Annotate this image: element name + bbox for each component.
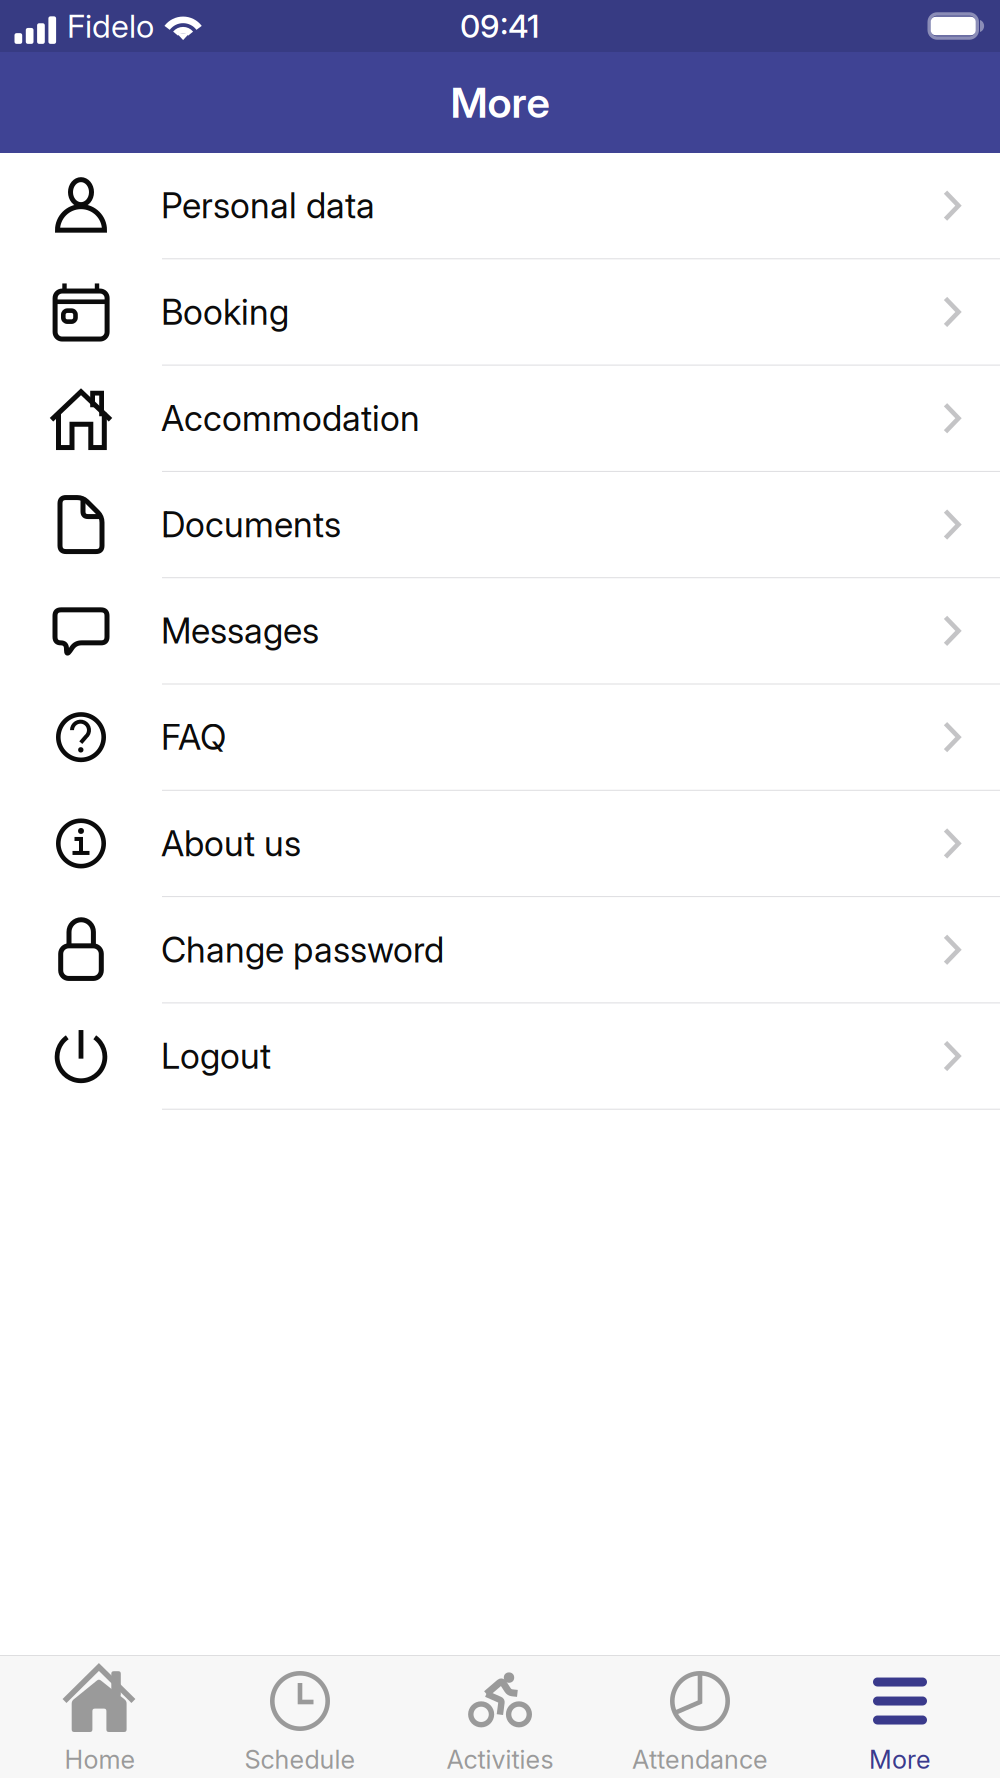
button[interactable]: Personal data (0, 153, 1000, 259)
button[interactable]: Accommodation (0, 366, 1000, 472)
button[interactable]: About us (0, 791, 1000, 897)
button[interactable]: Logout (0, 1003, 1000, 1110)
button[interactable]: Schedule (200, 1656, 400, 1778)
staticText: 09:41 (460, 7, 540, 45)
staticText: More (869, 1744, 931, 1775)
staticText: Documents (161, 503, 341, 546)
button[interactable]: Messages (0, 578, 1000, 684)
button[interactable]: Home (0, 1656, 200, 1778)
staticText: Logout (161, 1035, 271, 1077)
button[interactable]: FAQ (0, 684, 1000, 791)
button[interactable]: Booking (0, 259, 1000, 366)
staticText: Schedule (244, 1744, 355, 1775)
staticText: About us (161, 822, 301, 865)
staticText: Home (64, 1744, 135, 1775)
button[interactable]: Change password (0, 897, 1000, 1003)
button[interactable]: Attendance (600, 1656, 800, 1778)
button[interactable]: More (800, 1656, 1000, 1778)
button[interactable]: Activities (400, 1656, 600, 1778)
staticText: FAQ (161, 716, 226, 758)
staticText: Messages (161, 610, 319, 652)
staticText: Fidelo (67, 7, 154, 45)
button[interactable]: Documents (0, 472, 1000, 578)
staticText: More (450, 77, 549, 128)
staticText: Attendance (632, 1744, 768, 1775)
staticText: Change password (161, 929, 444, 971)
staticText: Personal data (161, 184, 375, 227)
staticText: Activities (446, 1744, 553, 1775)
staticText: Accommodation (161, 397, 420, 439)
staticText: Booking (161, 291, 289, 333)
